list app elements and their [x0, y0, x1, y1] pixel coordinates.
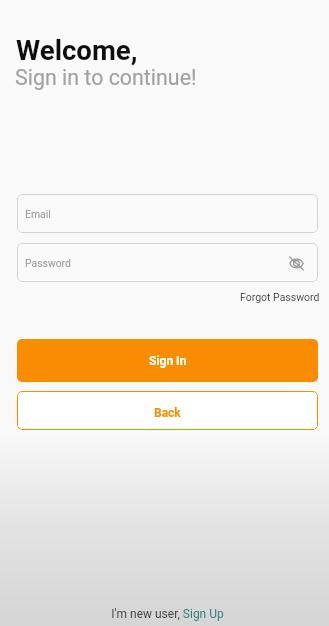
staticText: Email — [25, 208, 51, 220]
staticText: Back — [154, 406, 181, 420]
staticText: Sign in to continue! — [15, 65, 197, 90]
staticText: Password — [25, 257, 71, 269]
staticText: Sign In — [149, 354, 187, 368]
button[interactable]: Email — [17, 194, 318, 233]
button[interactable]: Sign In — [17, 339, 318, 382]
button[interactable]: I'm new user, Sign Up — [111, 607, 224, 621]
button[interactable]: Forgot Password — [240, 291, 320, 303]
staticText: I'm new user, Sign Up — [111, 607, 224, 621]
button[interactable]: Show password — [285, 252, 307, 274]
button[interactable]: Back — [17, 391, 318, 430]
staticText: Welcome, — [16, 34, 138, 66]
button[interactable]: Password — [17, 243, 318, 282]
staticText: Forgot Password — [240, 291, 320, 303]
